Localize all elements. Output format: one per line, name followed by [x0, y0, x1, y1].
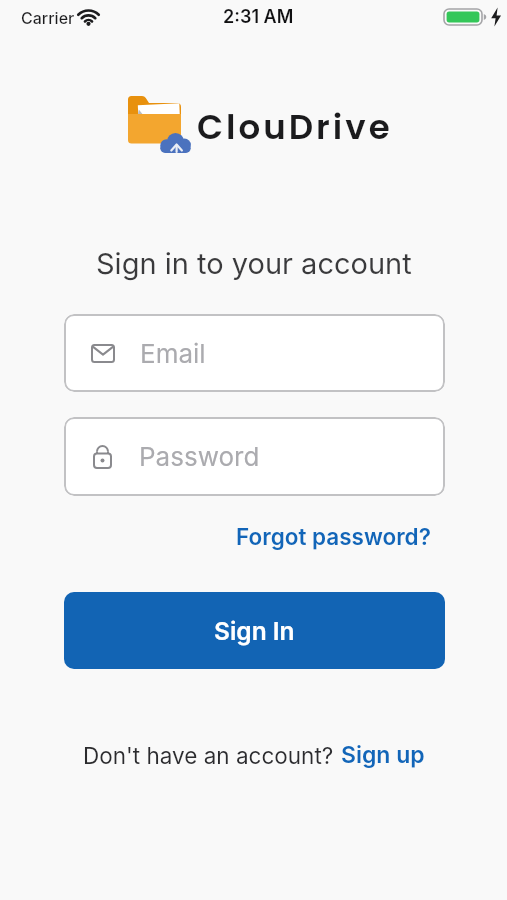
staticText: Carrier — [21, 8, 75, 27]
staticText: Sign in to your account — [96, 246, 412, 281]
staticText: Sign up — [341, 741, 425, 769]
staticText: Sign In — [214, 616, 295, 646]
staticText: Email — [140, 338, 206, 369]
staticText: ClouDrive — [197, 103, 393, 151]
staticText: Don't have an account? — [83, 742, 334, 769]
button[interactable]: Password — [64, 417, 445, 496]
staticText: 2:31 AM — [223, 6, 294, 28]
button[interactable]: Sign up — [341, 741, 425, 769]
button[interactable]: Forgot password? — [236, 523, 431, 550]
button[interactable]: Sign In — [64, 592, 445, 669]
button[interactable]: Email — [64, 314, 445, 392]
staticText: Password — [139, 441, 260, 472]
staticText: Forgot password? — [236, 523, 431, 550]
